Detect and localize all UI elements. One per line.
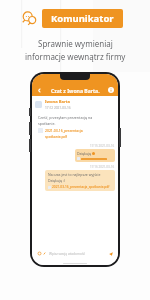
button[interactable]: Wyślij: [108, 251, 114, 257]
staticText: Komunikator: [51, 12, 114, 25]
staticText: informacje wewnątrz firmy: [25, 51, 126, 62]
staticText: 17:16 2021-03-16: [90, 165, 115, 169]
button[interactable]: Wstecz: [35, 86, 43, 94]
staticText: Wpisz swoją wiadomość: [49, 252, 85, 256]
staticText: 17:15 2021-03-16: [90, 144, 115, 148]
button[interactable]: Na czas jest to najlepsze wyjście: [45, 170, 115, 191]
staticText: 2021-03-16_prezentacja: [45, 128, 83, 133]
staticText: Dziękuję: [77, 151, 91, 156]
staticText: Na czas jest to najlepsze wyjście: [48, 172, 101, 177]
staticText: Iwona Barta: [45, 99, 70, 105]
staticText: spotkanie.: [38, 121, 56, 126]
button[interactable]: Cześć, przesyłam prezentację na: [35, 113, 109, 141]
staticText: Dziękuję :): [48, 178, 65, 183]
staticText: Czat z Iwona Barta.: [51, 87, 100, 94]
staticText: Cześć, przesyłam prezentację na: [38, 115, 93, 120]
staticText: Sprawnie wymieniaj: [38, 38, 113, 49]
button[interactable]: Dziękuję: [75, 149, 115, 162]
staticText: 2021-03-16_prezentacja_spotkanie.pdf: [52, 185, 110, 189]
button[interactable]: Załącz plik: [42, 251, 47, 256]
button[interactable]: Komunikator: [42, 9, 123, 28]
button[interactable]: Informacje: [107, 86, 115, 94]
button[interactable]: Emotikony: [37, 251, 42, 256]
button[interactable]: Komunikator: [22, 11, 37, 26]
staticText: spotkanie.pdf: [45, 134, 67, 139]
staticText: 17:12 2021-03-16: [45, 106, 71, 110]
button[interactable]: Emotikony: [35, 249, 115, 258]
